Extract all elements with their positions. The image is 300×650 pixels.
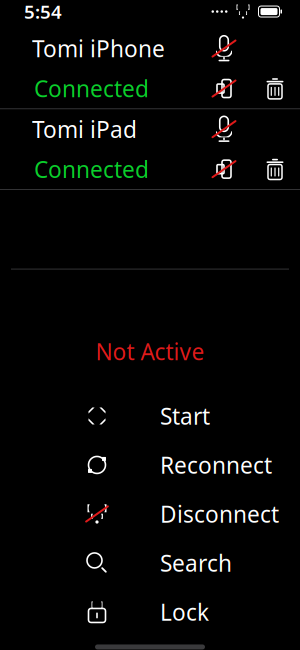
staticText: Disconnect — [160, 499, 279, 529]
staticText: Connected — [34, 73, 149, 104]
staticText: Tomi iPhone — [32, 33, 165, 64]
button[interactable]: Disconnect — [0, 489, 300, 538]
staticText: Connected — [34, 154, 149, 184]
button[interactable]: Microphone muted — [198, 109, 250, 149]
button[interactable]: Reconnect — [0, 440, 300, 489]
button[interactable]: Speaker muted — [198, 149, 250, 189]
staticText: 5:54 — [24, 0, 62, 24]
button[interactable]: Lock — [0, 587, 300, 636]
button[interactable]: Search — [0, 538, 300, 587]
button[interactable]: Delete Tomi iPad — [250, 149, 300, 189]
staticText: Start — [160, 401, 210, 431]
button[interactable]: Speaker muted — [198, 68, 250, 108]
staticText: Not Active — [95, 336, 204, 366]
button[interactable]: Microphone muted — [198, 28, 250, 68]
button[interactable]: Start — [0, 391, 300, 440]
staticText: Tomi iPad — [32, 114, 137, 144]
staticText: Lock — [160, 597, 209, 627]
staticText: Search — [160, 548, 232, 578]
button[interactable]: Delete Tomi iPhone — [250, 68, 300, 108]
staticText: Reconnect — [160, 450, 272, 480]
